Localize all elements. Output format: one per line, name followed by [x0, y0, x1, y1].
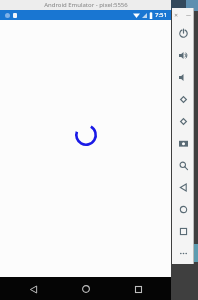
- button[interactable]: Zoom: [172, 154, 194, 176]
- staticText: ✕: [174, 12, 179, 18]
- button[interactable]: Screenshot: [172, 132, 194, 154]
- button[interactable]: Overview: [172, 220, 194, 242]
- staticText: —: [186, 12, 192, 19]
- staticText: 7:51: [155, 11, 167, 19]
- button[interactable]: Volume up: [172, 44, 194, 66]
- button[interactable]: Loading: [74, 123, 98, 147]
- button[interactable]: Volume down: [172, 66, 194, 88]
- button[interactable]: Back: [172, 176, 194, 198]
- button[interactable]: More: [172, 242, 194, 264]
- button[interactable]: Back: [22, 278, 44, 300]
- button[interactable]: Recent apps: [127, 278, 149, 300]
- button[interactable]: Rotate left: [172, 88, 194, 110]
- button[interactable]: Rotate right: [172, 110, 194, 132]
- button[interactable]: Home: [172, 198, 194, 220]
- staticText: Android Emulator - pixel:5556: [44, 1, 128, 9]
- button[interactable]: Home: [75, 278, 97, 300]
- button[interactable]: Power: [172, 22, 194, 44]
